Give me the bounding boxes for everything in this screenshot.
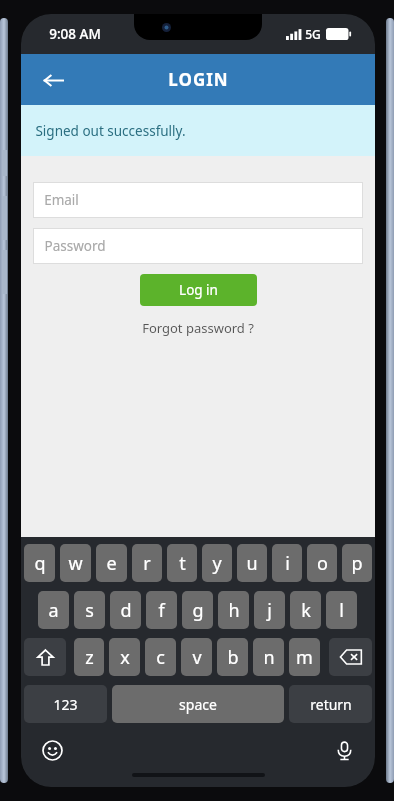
button[interactable]: a [38,591,69,629]
staticText: a [48,598,59,623]
button[interactable]: j [254,591,285,629]
staticText: 123 [53,695,78,714]
button[interactable]: Emoji [37,735,67,765]
button[interactable]: h [218,591,249,629]
staticText: z [85,645,94,670]
button[interactable]: d [110,591,141,629]
button[interactable]: i [272,544,302,582]
staticText: f [158,598,165,623]
button[interactable]: Back [31,58,75,102]
button[interactable]: return [289,685,372,723]
button[interactable]: Voice input [329,735,359,765]
staticText: Email [44,191,79,209]
button[interactable]: r [132,544,162,582]
button[interactable]: Password [33,228,363,264]
button[interactable]: t [167,544,197,582]
button[interactable]: v [181,638,212,676]
staticText: w [68,551,83,576]
staticText: Password [44,237,106,255]
button[interactable]: o [307,544,337,582]
button[interactable]: Log in [140,274,257,306]
staticText: Forgot password ? [142,319,254,337]
button[interactable]: q [24,544,55,582]
staticText: Log in [179,281,218,299]
staticText: n [263,645,275,670]
staticText: c [156,645,165,670]
staticText: p [351,551,363,576]
staticText: d [120,598,132,623]
staticText: g [192,598,204,623]
button[interactable]: e [96,544,127,582]
staticText: v [192,645,202,670]
button[interactable]: space [112,685,284,723]
staticText: x [120,645,130,670]
button[interactable]: n [253,638,284,676]
staticText: y [212,551,222,576]
button[interactable]: g [182,591,213,629]
staticText: return [310,695,352,714]
staticText: k [301,598,311,623]
button[interactable]: Email [33,182,363,218]
staticText: q [34,551,46,576]
button[interactable]: m [289,638,320,676]
button[interactable]: u [237,544,267,582]
staticText: u [246,551,258,576]
button[interactable]: Forgot password ? [134,316,262,340]
staticText: o [317,551,328,576]
button[interactable]: x [109,638,140,676]
staticText: 5G [305,26,321,42]
staticText: b [227,645,239,670]
button[interactable]: Shift [24,638,66,676]
button[interactable]: w [60,544,91,582]
button[interactable]: p [342,544,372,582]
staticText: e [106,551,117,576]
staticText: l [339,598,344,623]
staticText: t [179,551,186,576]
button[interactable]: l [326,591,357,629]
staticText: r [143,551,151,576]
button[interactable]: b [217,638,248,676]
button[interactable]: s [74,591,105,629]
button[interactable]: 123 [24,685,107,723]
staticText: h [228,598,240,623]
staticText: Signed out successfully. [35,122,186,140]
button[interactable]: k [290,591,321,629]
button[interactable]: y [202,544,232,582]
button[interactable]: Backspace [329,638,372,676]
staticText: j [267,598,272,623]
staticText: m [296,645,313,670]
staticText: s [85,598,94,623]
staticText: space [179,695,217,714]
button[interactable]: z [74,638,104,676]
staticText: LOGIN [168,68,229,91]
staticText: 9:08 AM [49,25,101,43]
button[interactable]: f [146,591,177,629]
staticText: i [285,551,290,576]
button[interactable]: c [145,638,176,676]
